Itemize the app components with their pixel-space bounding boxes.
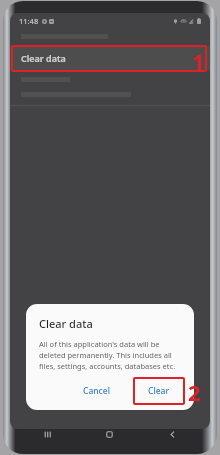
button[interactable]: Clear data — [10, 46, 210, 70]
button[interactable]: Back — [141, 425, 204, 443]
staticText: 11:48 — [19, 16, 39, 26]
staticText: 2 — [188, 377, 201, 403]
staticText: 1 — [192, 46, 205, 71]
button[interactable]: Clear — [135, 379, 183, 403]
button[interactable]: Recent apps — [16, 425, 78, 443]
staticText: All of this application's data will be d… — [39, 339, 185, 371]
staticText: Clear data — [21, 52, 66, 64]
button[interactable]: Home — [78, 425, 141, 443]
staticText: Clear data — [39, 316, 93, 331]
staticText: Clear — [148, 385, 170, 397]
staticText: Cancel — [83, 385, 110, 397]
button[interactable]: Cancel — [73, 379, 120, 403]
